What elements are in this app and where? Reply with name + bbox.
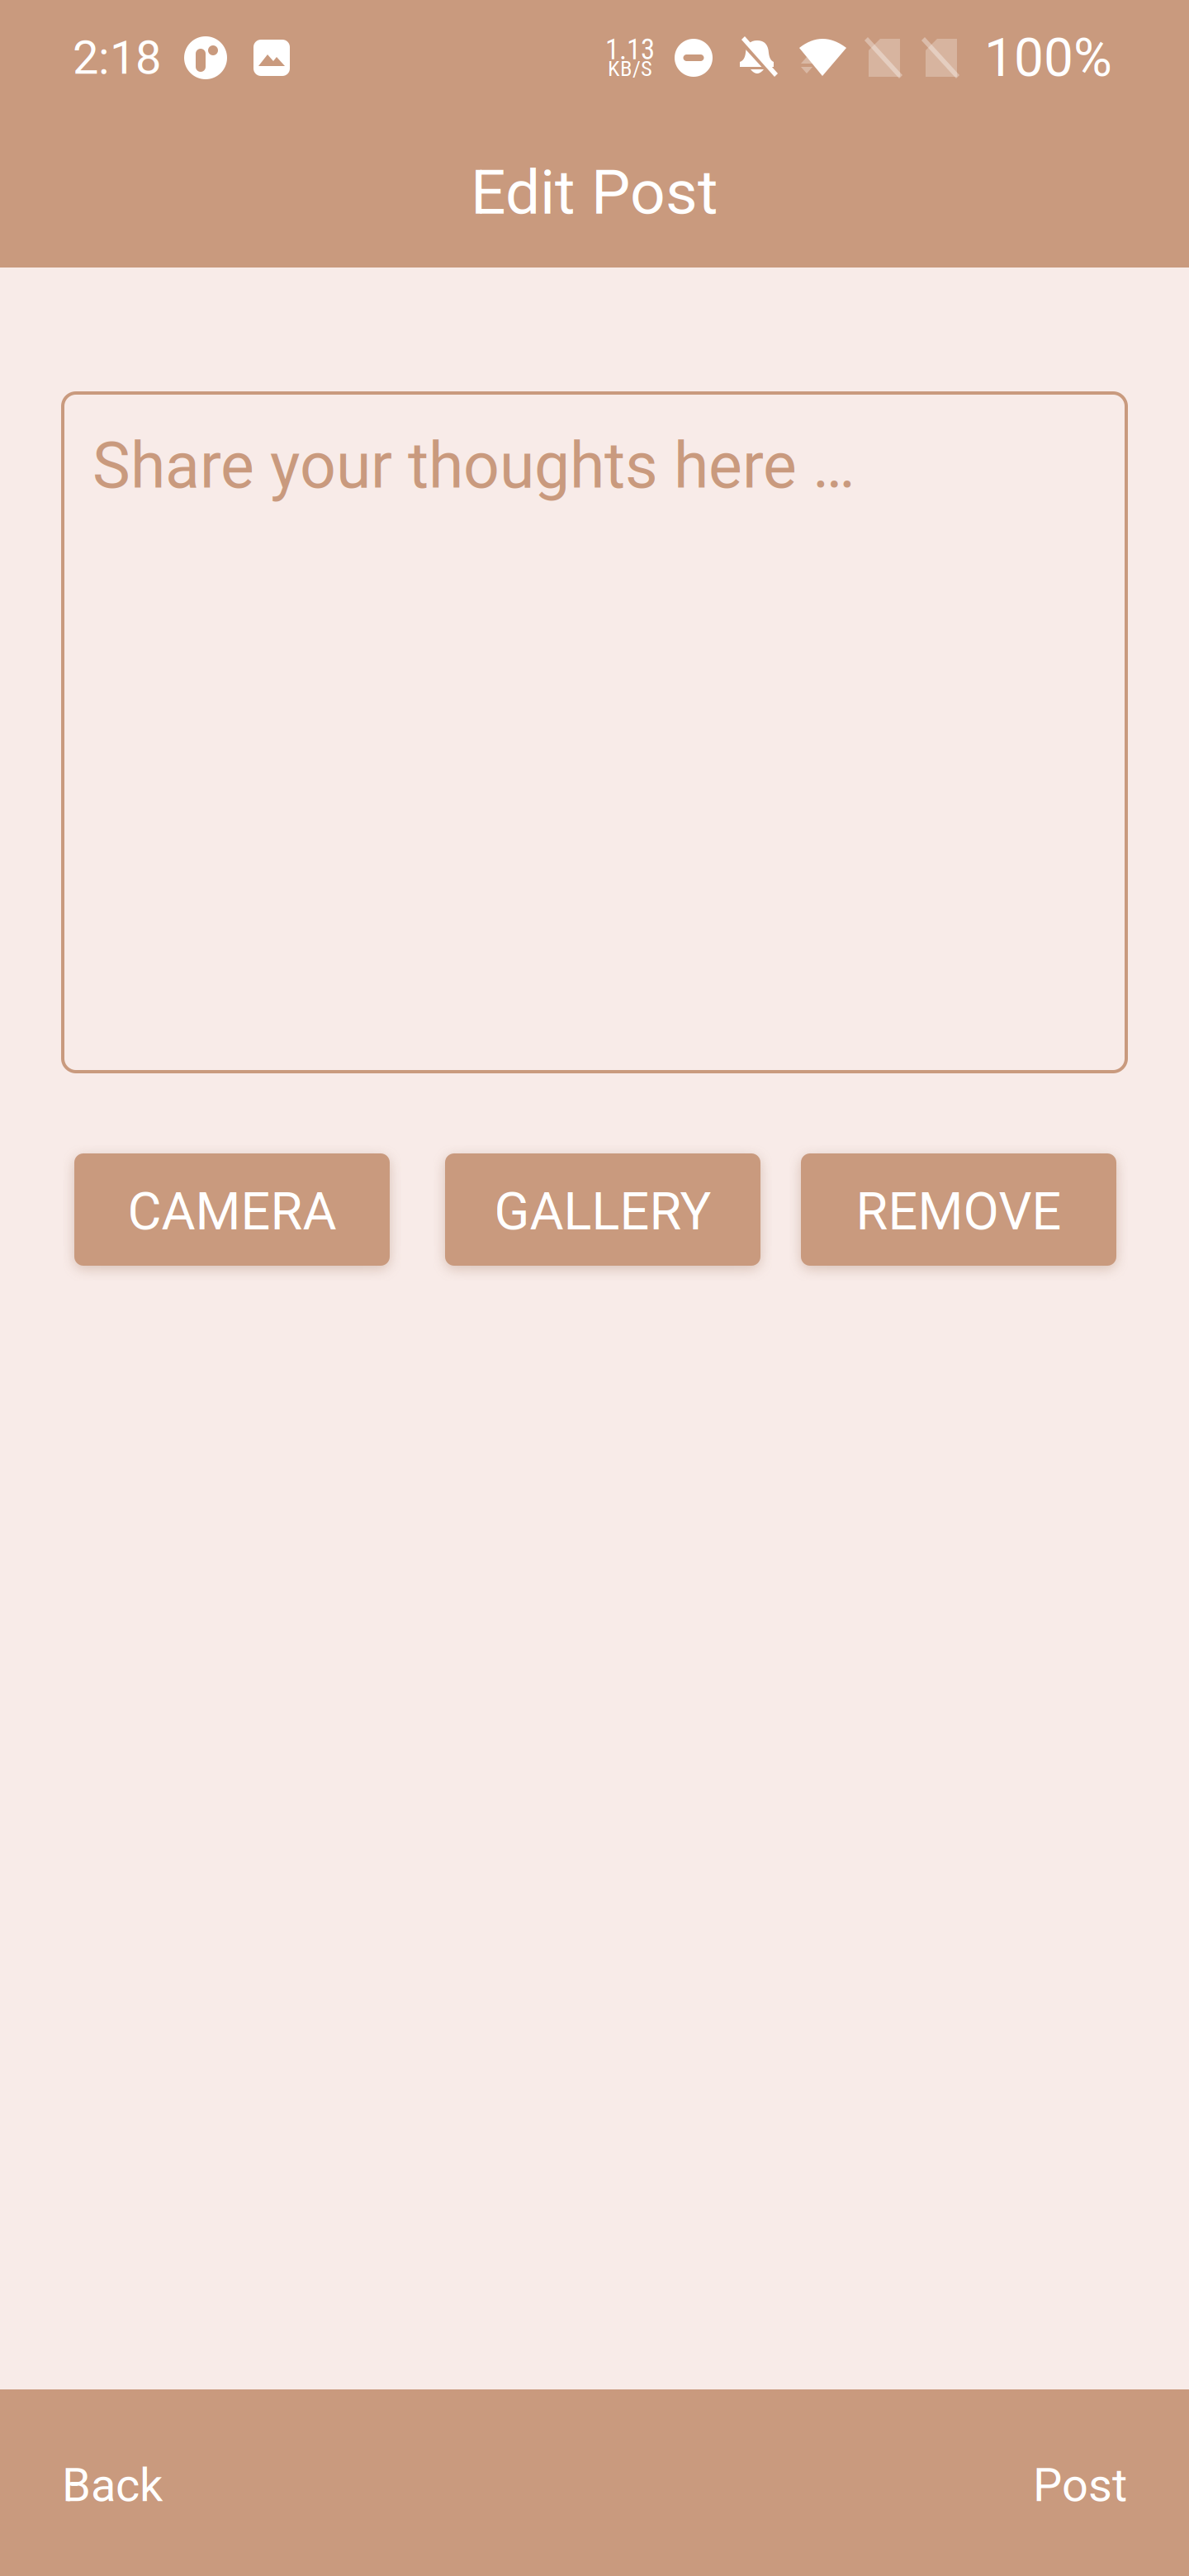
button[interactable]: Share your thoughts here … <box>63 393 1126 1072</box>
button[interactable]: GALLERY <box>445 1153 760 1266</box>
staticText: KB/S <box>608 55 652 81</box>
staticText: Post <box>1033 2458 1127 2512</box>
staticText: GALLERY <box>494 1181 711 1242</box>
button[interactable]: CAMERA <box>74 1153 390 1266</box>
staticText: 2:18 <box>73 31 161 85</box>
button[interactable]: Back <box>52 2436 173 2530</box>
staticText: CAMERA <box>128 1181 336 1242</box>
button[interactable]: Post <box>1023 2436 1137 2530</box>
staticText: 100% <box>984 27 1112 89</box>
staticText: Back <box>62 2458 163 2512</box>
staticText: REMOVE <box>856 1181 1061 1242</box>
staticText: Share your thoughts here … <box>92 429 855 503</box>
button[interactable]: REMOVE <box>801 1153 1116 1266</box>
staticText: 1.13 <box>605 33 655 66</box>
staticText: Edit Post <box>471 156 718 229</box>
